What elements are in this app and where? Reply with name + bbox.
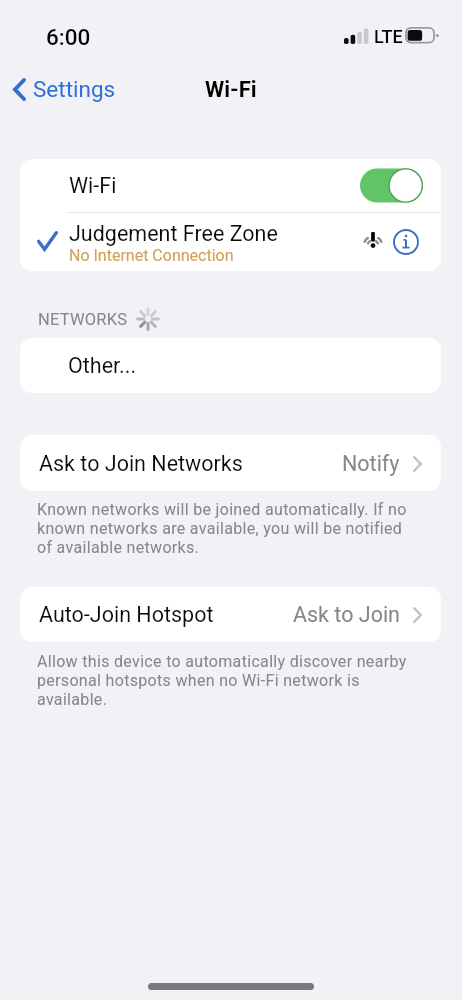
button[interactable]: Wi-Fi toggle, on [360, 168, 423, 203]
staticText: Judgement Free Zone [69, 221, 278, 246]
button[interactable]: Ask to Join Networks [20, 435, 441, 491]
staticText: Settings [33, 76, 116, 102]
staticText: Wi-Fi [205, 77, 257, 103]
staticText: Ask to Join Networks [39, 451, 243, 476]
staticText: LTE [374, 26, 403, 47]
staticText: Notify [342, 451, 400, 476]
staticText: NETWORKS [38, 310, 128, 329]
staticText: Ask to Join [293, 602, 400, 627]
staticText: Known networks will be joined automatica… [37, 500, 413, 557]
button[interactable]: Wi-Fi [20, 159, 441, 212]
staticText: Allow this device to automatically disco… [37, 652, 413, 709]
staticText: Other... [68, 353, 137, 378]
button[interactable]: Other... [20, 338, 441, 393]
staticText: 6:00 [46, 24, 91, 50]
button[interactable]: Judgement Free Zone [20, 213, 441, 271]
staticText: No Internet Connection [69, 246, 234, 265]
button[interactable]: Settings [7, 72, 122, 106]
button[interactable]: Network information [390, 226, 422, 258]
staticText: Wi-Fi [69, 173, 117, 198]
button[interactable]: Auto-Join Hotspot [20, 587, 441, 642]
staticText: Auto-Join Hotspot [39, 602, 214, 627]
